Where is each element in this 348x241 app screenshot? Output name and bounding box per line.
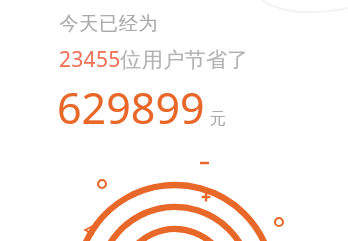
staticText: 629899 元 — [57, 78, 226, 137]
staticText: 今天已经为 — [59, 12, 158, 36]
staticText: 23455位用户节省了 — [59, 45, 249, 74]
